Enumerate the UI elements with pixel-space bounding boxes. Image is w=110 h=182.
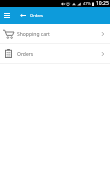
button[interactable]: Menu <box>0 7 14 24</box>
staticText: Orders <box>30 13 43 18</box>
staticText: Shopping cart <box>17 31 50 38</box>
button[interactable]: Shopping cart <box>0 24 110 43</box>
staticText: 10:25 <box>96 0 109 7</box>
staticText: Orders <box>17 51 34 58</box>
button[interactable]: Orders <box>0 44 110 63</box>
staticText: 47% <box>83 1 91 6</box>
button[interactable]: Back <box>16 7 28 24</box>
